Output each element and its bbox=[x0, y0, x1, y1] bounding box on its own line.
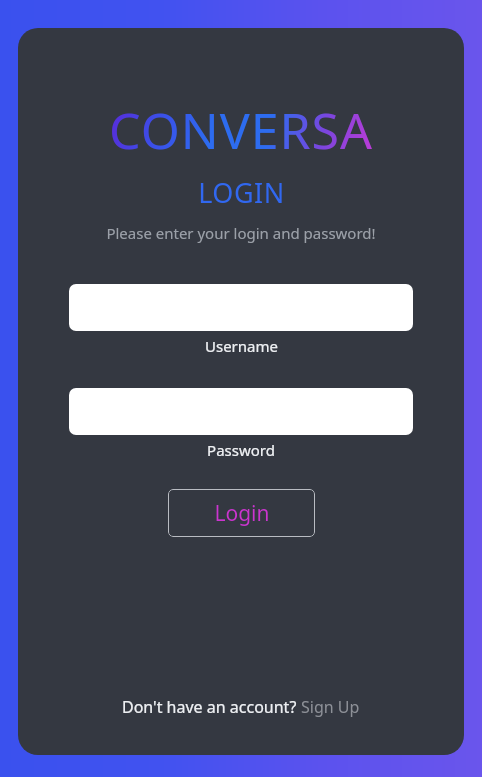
staticText: CONVERSA bbox=[109, 96, 373, 164]
staticText: Sign Up bbox=[301, 696, 360, 718]
button[interactable]: Text input field bbox=[69, 388, 413, 435]
button[interactable]: Text input field bbox=[69, 284, 413, 331]
staticText: Please enter your login and password! bbox=[106, 223, 376, 243]
staticText: Username bbox=[205, 336, 278, 356]
staticText: Don't have an account? bbox=[122, 696, 301, 718]
button[interactable]: Sign Up bbox=[301, 696, 360, 718]
staticText: Login bbox=[214, 499, 270, 528]
staticText: LOGIN bbox=[198, 174, 285, 211]
staticText: Password bbox=[207, 440, 275, 460]
button[interactable]: Login bbox=[168, 489, 315, 537]
